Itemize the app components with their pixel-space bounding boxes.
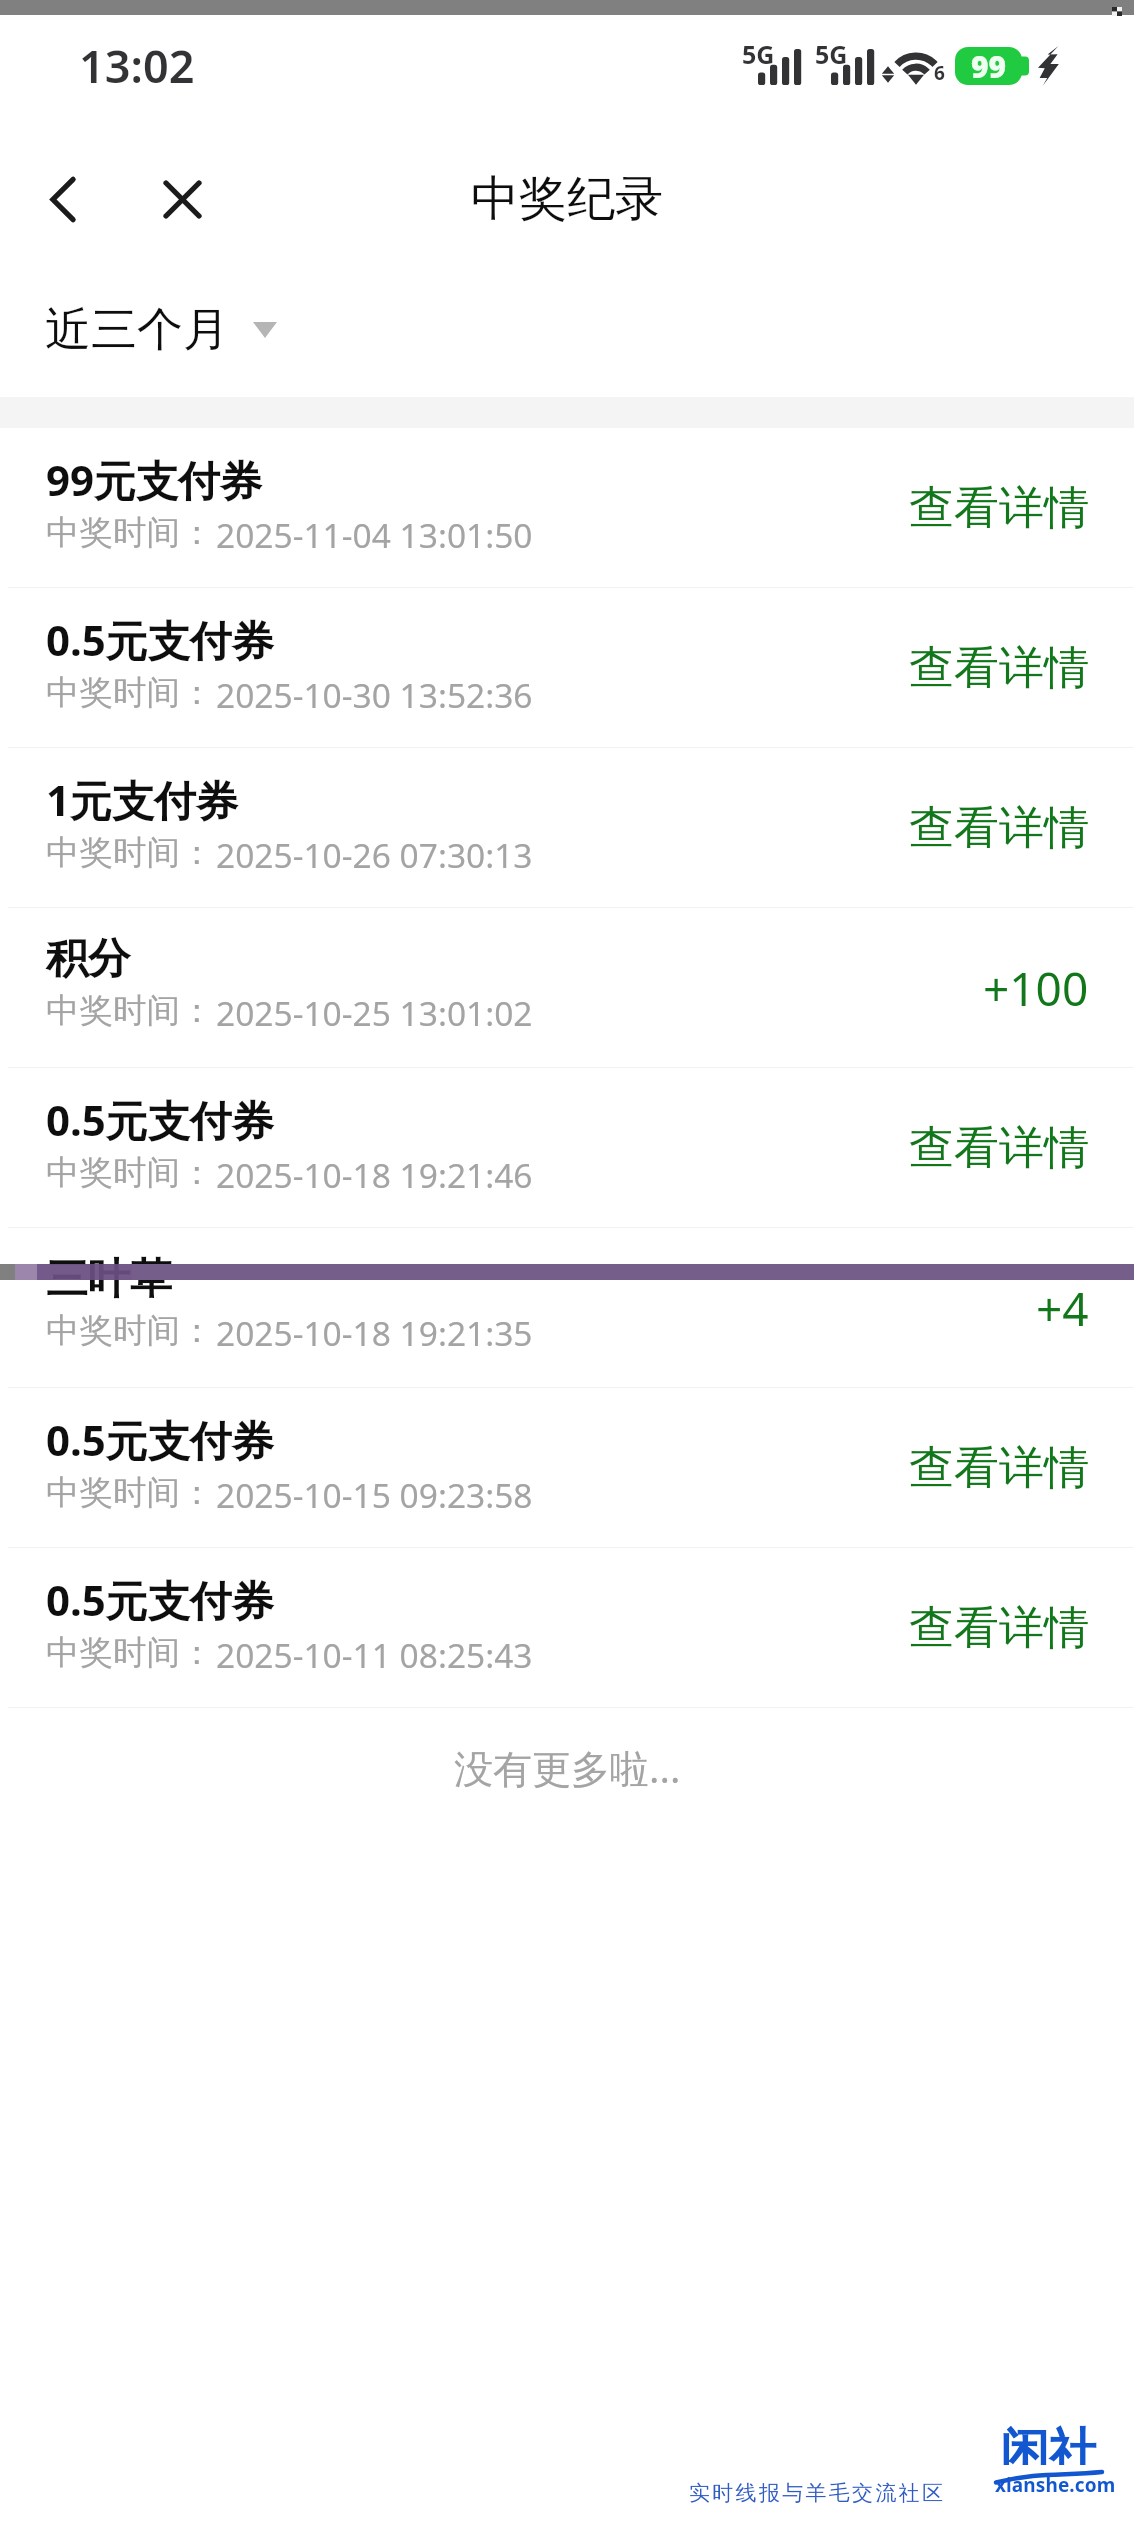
staticText: 13:02: [79, 35, 195, 96]
staticText: 查看详情: [909, 1120, 1089, 1177]
button[interactable]: 0.5元支付券: [0, 1548, 1134, 1708]
staticText: 中奖时间：: [46, 1152, 214, 1194]
staticText: 积分: [46, 933, 130, 986]
staticText: 0.5元支付券: [46, 611, 274, 668]
staticText: 5G: [742, 37, 775, 71]
staticText: 99: [971, 46, 1007, 84]
staticText: 闲社: [1000, 2421, 1098, 2465]
button[interactable]: Close: [126, 144, 238, 254]
staticText: 0.5元支付券: [46, 1571, 274, 1628]
staticText: 1元支付券: [46, 771, 239, 828]
button[interactable]: 1元支付券: [0, 748, 1134, 908]
staticText: 99元支付券: [46, 451, 263, 508]
staticText: 2025-10-18 19:21:46: [216, 1152, 533, 1198]
button[interactable]: Back: [0, 144, 126, 254]
staticText: 查看详情: [909, 800, 1089, 857]
button[interactable]: 近三个月: [0, 280, 1134, 397]
staticText: 5G: [815, 37, 848, 71]
staticText: 2025-10-26 07:30:13: [216, 832, 533, 878]
staticText: 中奖纪录: [471, 169, 663, 229]
staticText: 中奖时间：: [46, 672, 214, 714]
staticText: 2025-10-30 13:52:36: [216, 672, 533, 718]
staticText: 查看详情: [909, 480, 1089, 537]
staticText: 0.5元支付券: [46, 1411, 274, 1468]
staticText: 三叶草: [46, 1253, 172, 1306]
staticText: 中奖时间：: [46, 990, 214, 1032]
staticText: 中奖时间：: [46, 1632, 214, 1674]
staticText: 2025-10-15 09:23:58: [216, 1472, 533, 1518]
staticText: 实时线报与羊毛交流社区: [689, 2480, 946, 2506]
staticText: 6: [934, 60, 945, 86]
button[interactable]: 99元支付券: [0, 428, 1134, 588]
staticText: +100: [983, 957, 1089, 1020]
staticText: 查看详情: [909, 1600, 1089, 1657]
staticText: 2025-10-25 13:01:02: [216, 990, 533, 1036]
button[interactable]: 0.5元支付券: [0, 1388, 1134, 1548]
button[interactable]: 三叶草: [0, 1228, 1134, 1388]
staticText: 查看详情: [909, 1440, 1089, 1497]
staticText: 中奖时间：: [46, 512, 214, 554]
staticText: 查看详情: [909, 640, 1089, 697]
staticText: 2025-11-04 13:01:50: [216, 512, 533, 558]
staticText: 2025-10-11 08:25:43: [216, 1632, 533, 1678]
staticText: 没有更多啦...: [454, 1741, 681, 1794]
staticText: xianshe.com: [995, 2472, 1115, 2498]
button[interactable]: 0.5元支付券: [0, 588, 1134, 748]
staticText: 中奖时间：: [46, 1310, 214, 1352]
staticText: 中奖时间：: [46, 832, 214, 874]
staticText: 中奖时间：: [46, 1472, 214, 1514]
staticText: +4: [1036, 1277, 1089, 1340]
staticText: 近三个月: [45, 301, 229, 359]
staticText: 0.5元支付券: [46, 1091, 274, 1148]
staticText: 2025-10-18 19:21:35: [216, 1310, 533, 1356]
button[interactable]: 0.5元支付券: [0, 1068, 1134, 1228]
button[interactable]: 积分: [0, 908, 1134, 1068]
